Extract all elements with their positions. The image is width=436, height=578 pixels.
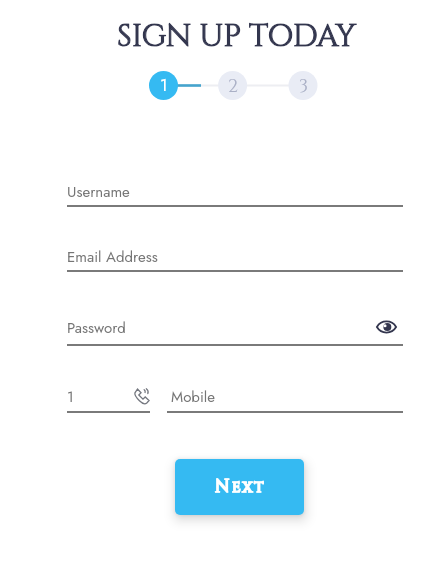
- staticText: 2: [228, 74, 238, 98]
- staticText: Username: [67, 181, 130, 203]
- button[interactable]: Password: [67, 319, 403, 346]
- button[interactable]: 1: [67, 386, 150, 413]
- staticText: EXT: [232, 478, 266, 498]
- button[interactable]: Step 3: [289, 71, 318, 100]
- button[interactable]: Step 2: [218, 71, 247, 100]
- button[interactable]: N: [175, 459, 304, 515]
- button[interactable]: Show password: [372, 314, 400, 341]
- staticText: Mobile: [171, 386, 215, 408]
- staticText: Password: [67, 317, 126, 339]
- button[interactable]: Email Address: [67, 245, 403, 272]
- staticText: N: [215, 475, 232, 498]
- button[interactable]: Step 1: [149, 71, 178, 100]
- staticText: SIGN UP TODAY: [117, 16, 357, 58]
- other: Phone: [134, 388, 150, 404]
- staticText: Email Address: [67, 246, 158, 268]
- staticText: 1: [160, 73, 168, 98]
- staticText: N: [215, 475, 232, 498]
- staticText: EXT: [232, 478, 266, 498]
- staticText: 1: [67, 386, 74, 408]
- staticText: 3: [299, 74, 309, 98]
- button[interactable]: Mobile: [167, 386, 403, 413]
- staticText: SIGN UP TODAY: [117, 16, 357, 58]
- button[interactable]: Username: [67, 180, 403, 207]
